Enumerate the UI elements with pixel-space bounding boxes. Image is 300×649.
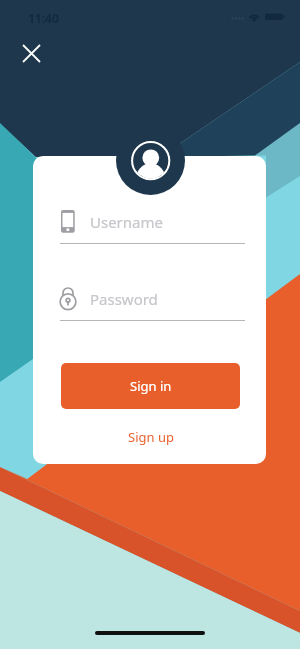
button[interactable]: Sign up bbox=[61, 419, 240, 454]
staticText: Password bbox=[90, 289, 158, 309]
button[interactable]: Close bbox=[14, 36, 48, 70]
staticText: Sign in bbox=[130, 377, 172, 395]
staticText: Sign up bbox=[128, 428, 174, 446]
button[interactable]: Sign in bbox=[61, 363, 240, 409]
staticText: Username bbox=[90, 212, 163, 232]
staticText: 11:40 bbox=[28, 10, 59, 26]
